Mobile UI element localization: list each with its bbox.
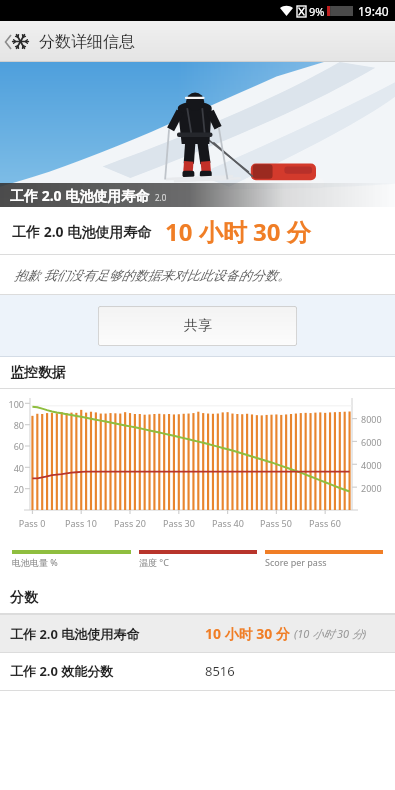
staticText: Pass 10 <box>59 517 103 529</box>
staticText: 8516 <box>205 662 235 680</box>
staticText: 分数详细信息 <box>39 32 135 52</box>
staticText: 4000 <box>361 459 382 471</box>
staticText: 监控数据 <box>10 364 66 382</box>
button[interactable]: 工作 2.0 电池使用寿命 <box>0 614 395 652</box>
staticText: Score per pass <box>265 556 327 568</box>
staticText: 抱歉 我们没有足够的数据来对比此设备的分数。 <box>14 266 291 284</box>
staticText: Pass 20 <box>108 517 152 529</box>
staticText: Pass 60 <box>303 517 347 529</box>
staticText: 工作 2.0 电池使用寿命 <box>10 186 150 205</box>
staticText: 60 <box>2 440 24 452</box>
staticText: 共享 <box>184 317 212 335</box>
staticText: 工作 2.0 效能分数 <box>10 662 114 680</box>
staticText: (10 小时 30 分) <box>294 626 367 641</box>
staticText: Pass 0 <box>10 517 54 529</box>
staticText: Pass 50 <box>254 517 298 529</box>
staticText: 10 小时 30 分 <box>205 624 290 643</box>
staticText: 分数 <box>10 589 38 607</box>
button[interactable]: Back <box>0 21 34 62</box>
staticText: 10 小时 30 分 <box>165 215 311 248</box>
staticText: 电池电量 % <box>12 556 58 568</box>
staticText: 工作 2.0 电池使用寿命 <box>10 625 140 643</box>
staticText: 工作 2.0 电池使用寿命 <box>12 222 152 241</box>
button[interactable]: 共享 <box>98 306 297 346</box>
staticText: Pass 40 <box>206 517 250 529</box>
staticText: 20 <box>2 483 24 495</box>
staticText: 温度 °C <box>139 556 169 568</box>
staticText: 40 <box>2 462 24 474</box>
staticText: 19:40 <box>358 3 389 19</box>
staticText: Pass 30 <box>157 517 201 529</box>
staticText: 8000 <box>361 413 382 425</box>
staticText: 9% <box>309 4 325 19</box>
button[interactable]: 工作 2.0 效能分数 <box>0 652 395 690</box>
staticText: 80 <box>2 419 24 431</box>
staticText: 2.0 <box>155 192 167 203</box>
staticText: 2000 <box>361 482 382 494</box>
staticText: 100 <box>2 398 24 410</box>
staticText: 6000 <box>361 436 382 448</box>
